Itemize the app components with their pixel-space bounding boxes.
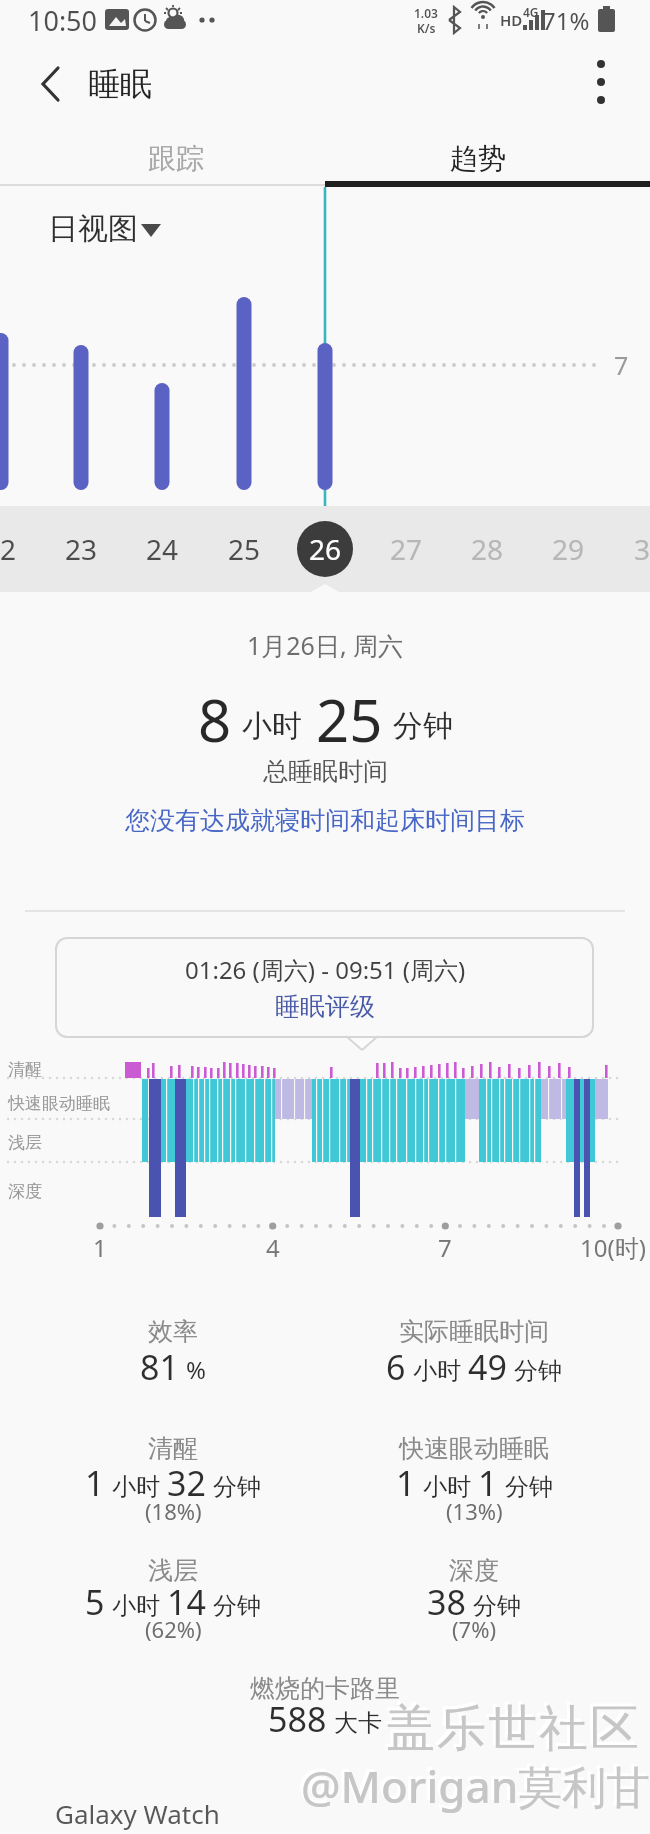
button[interactable]: 01:26 (周六) - 09:51 (周六) — [55, 937, 594, 1038]
staticText: 1 — [478, 1460, 498, 1506]
staticText: 81 — [140, 1344, 179, 1390]
staticText: 1 — [85, 1460, 105, 1506]
staticText: 1 — [93, 1231, 107, 1264]
staticText: 跟踪 — [148, 141, 204, 176]
button[interactable]: 23 — [41, 521, 121, 577]
staticText: 24 — [146, 530, 179, 568]
staticText: 小时 — [413, 1356, 461, 1386]
staticText: 10(时) — [580, 1231, 646, 1264]
staticText: 49 — [468, 1344, 507, 1390]
staticText: 快速眼动睡眠 — [399, 1433, 549, 1464]
staticText: 分钟 — [213, 1591, 261, 1621]
staticText: 睡眠 — [88, 64, 152, 104]
button[interactable]: 24 — [122, 521, 202, 577]
staticText: 日视图 — [48, 210, 138, 248]
staticText: 实际睡眠时间 — [399, 1316, 549, 1347]
button[interactable]: 27 — [366, 521, 446, 577]
staticText: 30 — [634, 530, 650, 568]
staticText: 燃烧的卡路里 — [250, 1673, 400, 1704]
staticText: @Morigan莫利甘 — [301, 1756, 650, 1816]
staticText: 7 — [438, 1231, 452, 1264]
staticText: 5 — [85, 1579, 105, 1625]
staticText: 睡眠评级 — [275, 991, 375, 1022]
staticText: 清醒 — [8, 1059, 42, 1080]
staticText: 大卡 — [334, 1708, 382, 1738]
staticText: 分钟 — [505, 1472, 553, 1502]
button[interactable]: 26 — [285, 521, 365, 577]
staticText: 4G — [523, 4, 539, 20]
staticText: 29 — [552, 530, 585, 568]
staticText: Galaxy Watch — [55, 1796, 220, 1831]
staticText: 588 — [268, 1696, 327, 1742]
button[interactable] — [30, 64, 74, 104]
staticText: 小时 — [112, 1472, 160, 1502]
staticText: 01:26 (周六) - 09:51 (周六) — [185, 953, 466, 986]
staticText: 盖乐世社区 — [385, 1698, 640, 1760]
staticText: 总睡眠时间 — [263, 756, 388, 787]
staticText: 趋势 — [450, 141, 506, 176]
staticText: 23 — [65, 530, 98, 568]
button[interactable]: 日视图 — [40, 205, 175, 253]
staticText: 快速眼动睡眠 — [8, 1093, 110, 1114]
staticText: (62%) — [145, 1614, 202, 1644]
staticText: 6 — [386, 1344, 406, 1390]
staticText: 4 — [266, 1231, 280, 1264]
staticText: 清醒 — [148, 1433, 198, 1464]
staticText: 分钟 — [473, 1591, 521, 1621]
button[interactable]: 跟踪 — [13, 130, 339, 186]
staticText: 71% — [542, 4, 590, 37]
staticText: HD — [500, 10, 523, 30]
staticText: (18%) — [145, 1496, 202, 1526]
staticText: 小时 — [242, 707, 302, 745]
staticText: 浅层 — [148, 1555, 198, 1586]
staticText: 25 — [316, 680, 383, 752]
staticText: 浅层 — [8, 1132, 42, 1153]
button[interactable] — [580, 60, 624, 104]
staticText: K/s — [417, 20, 436, 36]
staticText: 10:50 — [28, 2, 98, 39]
staticText: 32 — [167, 1460, 206, 1506]
staticText: (13%) — [446, 1496, 503, 1526]
staticText: % — [186, 1353, 206, 1386]
staticText: 1.03 — [414, 5, 438, 21]
staticText: (7%) — [452, 1614, 497, 1644]
staticText: @Morigan莫利甘 — [298, 1753, 648, 1813]
staticText: 深度 — [8, 1181, 42, 1202]
button[interactable]: 您没有达成就寝时间和起床时间目标 — [0, 795, 650, 845]
button[interactable]: 30 — [610, 521, 650, 577]
staticText: 分钟 — [514, 1356, 562, 1386]
staticText: 27 — [390, 530, 423, 568]
staticText: 1月26日, 周六 — [247, 628, 404, 662]
staticText: 38 — [427, 1579, 466, 1625]
staticText: 8 — [198, 680, 232, 752]
button[interactable]: 趋势 — [315, 130, 641, 186]
staticText: 分钟 — [393, 707, 453, 745]
button[interactable]: 22 — [0, 521, 40, 577]
staticText: 26 — [309, 530, 342, 568]
button[interactable]: 28 — [447, 521, 527, 577]
button[interactable]: 29 — [528, 521, 608, 577]
staticText: 效率 — [148, 1316, 198, 1347]
staticText: 盖乐世社区 — [382, 1695, 637, 1757]
staticText: 1 — [396, 1460, 416, 1506]
staticText: 深度 — [449, 1555, 499, 1586]
staticText: 25 — [228, 530, 261, 568]
staticText: 分钟 — [213, 1472, 261, 1502]
button[interactable]: 25 — [204, 521, 284, 577]
staticText: 7 — [614, 348, 629, 382]
staticText: 28 — [471, 530, 504, 568]
staticText: 小时 — [112, 1591, 160, 1621]
staticText: 小时 — [423, 1472, 471, 1502]
staticText: 您没有达成就寝时间和起床时间目标 — [125, 805, 525, 836]
staticText: 22 — [0, 530, 17, 568]
staticText: 14 — [167, 1579, 206, 1625]
